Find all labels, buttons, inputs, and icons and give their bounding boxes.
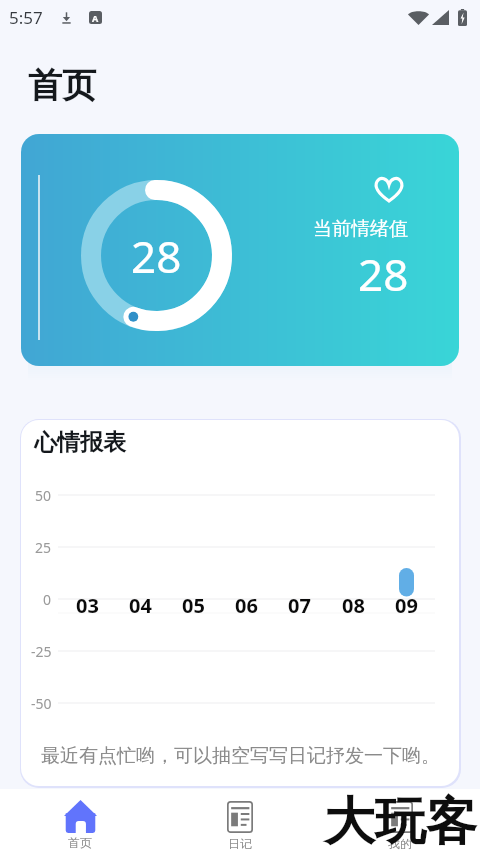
staticText: 08 [342, 592, 365, 619]
staticText: 日记 [228, 836, 252, 851]
button[interactable]: 我的 [320, 789, 480, 853]
button[interactable]: 28 [21, 134, 459, 366]
staticText: -50 [31, 694, 52, 713]
staticText: 最近有点忙哟，可以抽空写写日记抒发一下哟。 [41, 744, 440, 768]
staticText: A [92, 12, 99, 24]
button[interactable]: 首页 [0, 789, 160, 853]
staticText: 首页 [28, 64, 96, 107]
staticText: 09 [395, 592, 418, 619]
staticText: 当前情绪值 [313, 217, 408, 241]
staticText: 06 [235, 592, 258, 619]
staticText: 0 [43, 590, 52, 609]
staticText: 05 [182, 592, 205, 619]
staticText: 大玩客 [324, 790, 477, 853]
staticText: 50 [35, 486, 52, 505]
staticText: 07 [288, 592, 311, 619]
staticText: 28 [131, 226, 182, 286]
staticText: 我的 [388, 836, 412, 851]
staticText: 首页 [68, 835, 92, 850]
staticText: 心情报表 [34, 428, 126, 457]
staticText: 03 [76, 592, 99, 619]
button[interactable]: 日记 [160, 789, 320, 853]
staticText: -25 [31, 642, 52, 661]
staticText: 28 [358, 244, 409, 304]
staticText: 25 [35, 538, 52, 557]
staticText: 5:57 [9, 6, 43, 29]
staticText: 04 [129, 592, 152, 619]
